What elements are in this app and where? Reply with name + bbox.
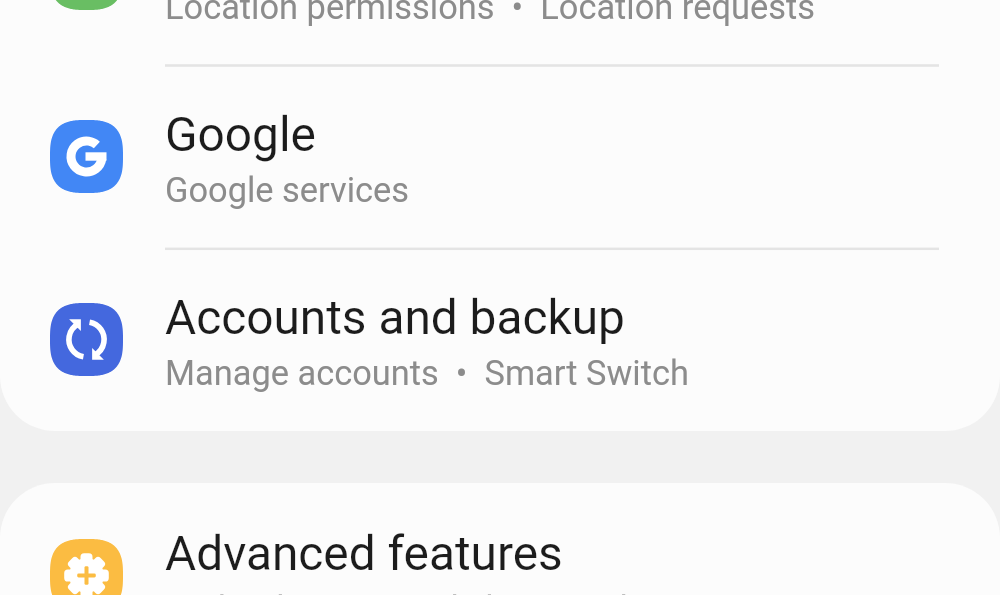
other: Advanced features [50, 539, 123, 595]
button[interactable]: Location [0, 0, 1000, 66]
other: Location [50, 0, 123, 10]
staticText: Location permissions • Location requests [165, 0, 815, 27]
other: Google [50, 120, 123, 193]
staticText: Advanced features [165, 526, 563, 582]
button[interactable]: Accounts and backup [0, 249, 1000, 432]
button[interactable]: Google [0, 66, 1000, 249]
staticText: Google [165, 107, 316, 163]
staticText: Manage accounts • Smart Switch [165, 353, 689, 393]
staticText: Google services [165, 170, 410, 210]
staticText: Accounts and backup [165, 290, 625, 346]
button[interactable]: Advanced features [0, 485, 1000, 595]
other: Accounts and backup [50, 303, 123, 376]
staticText: Android Auto • Side key • Labs [165, 589, 657, 595]
